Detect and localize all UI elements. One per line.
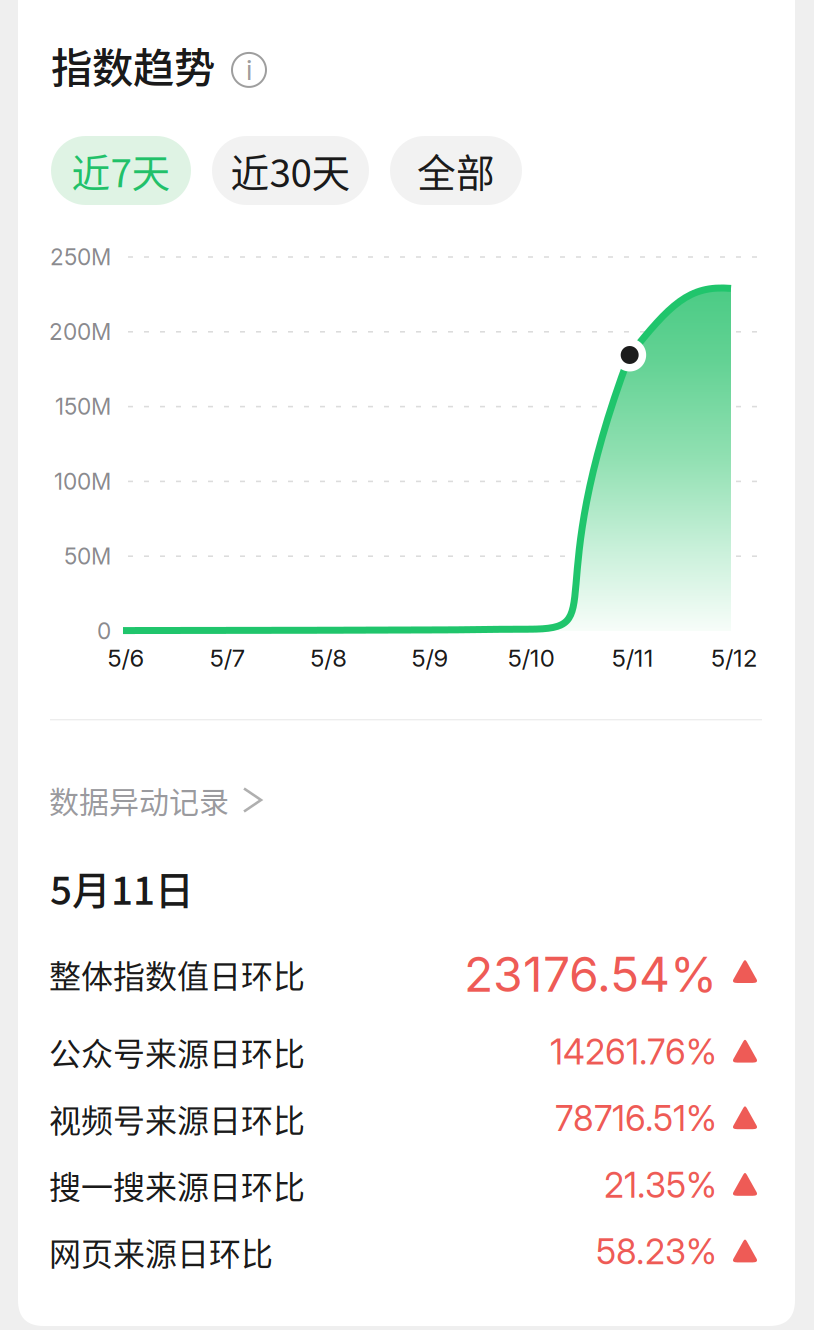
button[interactable]: 全部 [390, 136, 522, 205]
staticText: 200M [49, 318, 111, 345]
staticText: 50M [64, 542, 111, 570]
staticText: 21.35% [604, 1164, 717, 1206]
staticText: 视频号来源日环比 [49, 1095, 305, 1142]
staticText: 近7天 [71, 142, 170, 198]
staticText: 5/8 [310, 643, 347, 672]
staticText: 58.23% [596, 1231, 717, 1273]
button[interactable]: 整体指数值日环比 [0, 952, 814, 1019]
button[interactable]: 数据异动记录 [49, 775, 449, 825]
button[interactable]: 指数趋势说明 [228, 44, 270, 86]
staticText: 公众号来源日环比 [49, 1029, 305, 1075]
staticText: 5/11 [612, 643, 654, 672]
staticText: 全部 [417, 142, 495, 198]
staticText: 近30天 [230, 142, 350, 198]
button[interactable]: 近30天 [212, 136, 369, 205]
staticText: 150M [55, 393, 111, 420]
button[interactable]: 近7天 [51, 136, 191, 205]
staticText: 5/6 [107, 643, 144, 672]
staticText: 23176.54% [464, 945, 717, 1003]
staticText: 5/10 [508, 643, 555, 672]
staticText: 指数趋势 [51, 35, 215, 95]
staticText: 整体指数值日环比 [49, 951, 305, 997]
staticText: 5/12 [711, 643, 757, 672]
staticText: 100M [54, 468, 111, 495]
staticText: 78716.51% [555, 1097, 717, 1139]
staticText: 250M [50, 243, 111, 271]
staticText: 网页来源日环比 [49, 1228, 273, 1275]
button[interactable]: 视频号来源日环比 [0, 1085, 814, 1152]
button[interactable]: 公众号来源日环比 [0, 1019, 814, 1085]
staticText: i [246, 53, 252, 87]
staticText: 5/9 [411, 643, 448, 672]
staticText: 5/7 [210, 643, 245, 672]
staticText: 14261.76% [550, 1031, 717, 1073]
staticText: 搜一搜来源日环比 [49, 1162, 305, 1208]
staticText: 5月11日 [50, 860, 194, 916]
button[interactable]: 网页来源日环比 [0, 1218, 814, 1285]
button[interactable]: 搜一搜来源日环比 [0, 1152, 814, 1218]
staticText: 0 [97, 617, 111, 645]
staticText: 数据异动记录 [49, 778, 229, 822]
